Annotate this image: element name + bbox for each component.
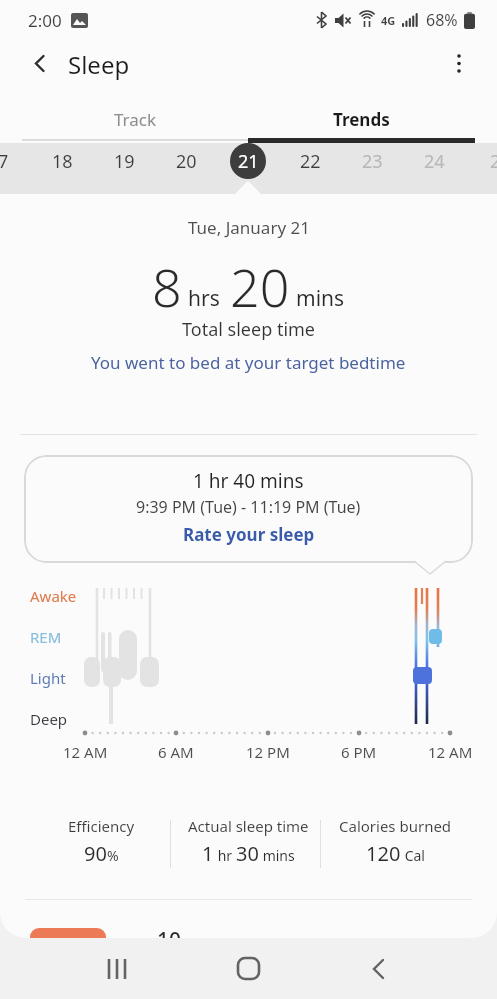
button[interactable]: Actual sleep time — [168, 812, 328, 867]
button[interactable]: 21 — [230, 143, 266, 179]
button[interactable]: Track — [22, 96, 248, 143]
staticText: 8 — [152, 251, 182, 322]
button[interactable] — [226, 946, 271, 991]
staticText: 90 — [84, 840, 107, 867]
staticText: Awake — [30, 586, 77, 606]
staticText: REM — [30, 627, 62, 647]
staticText: 20 — [176, 149, 197, 174]
staticText: Track — [114, 108, 157, 131]
button[interactable]: 24 — [404, 143, 464, 179]
button[interactable]: 7 — [0, 143, 33, 179]
staticText: 10 — [157, 926, 182, 938]
staticText: 4G — [381, 13, 396, 28]
button[interactable] — [356, 946, 401, 991]
staticText: 19 — [114, 149, 135, 174]
button[interactable]: Efficiency — [26, 812, 176, 867]
staticText: 20 — [230, 251, 290, 322]
staticText: 23 — [362, 149, 383, 174]
staticText: 30 — [236, 840, 259, 867]
staticText: Total sleep time — [182, 317, 316, 342]
button[interactable]: 2 — [465, 143, 497, 179]
button[interactable]: Calories burned — [315, 812, 475, 867]
staticText: 6 AM — [158, 742, 194, 762]
button[interactable]: Trends — [248, 96, 475, 143]
staticText: % — [107, 846, 119, 865]
staticText: 68% — [426, 9, 458, 31]
button[interactable]: 20 — [156, 143, 216, 179]
staticText: hr — [214, 846, 236, 865]
staticText: 22 — [300, 149, 321, 174]
staticText: 7 — [0, 149, 9, 174]
staticText: Calories burned — [339, 816, 452, 836]
staticText: 12 PM — [246, 742, 290, 762]
button[interactable] — [440, 44, 478, 82]
button[interactable]: 1 hr 40 mins — [24, 455, 473, 563]
staticText: Sleep — [68, 48, 130, 81]
staticText: Efficiency — [68, 816, 135, 836]
staticText: 6 PM — [341, 742, 377, 762]
staticText: Trends — [333, 108, 390, 131]
staticText: Actual sleep time — [188, 816, 309, 836]
staticText: 1 — [202, 840, 214, 867]
button[interactable]: 22 — [280, 143, 340, 179]
staticText: 18 — [52, 149, 73, 174]
staticText: Cal — [401, 846, 425, 865]
staticText: 12 AM — [63, 742, 108, 762]
staticText: Light — [30, 668, 66, 688]
staticText: 120 — [366, 840, 401, 867]
staticText: 24 — [424, 149, 445, 174]
staticText: Deep — [30, 709, 68, 729]
staticText: mins — [259, 846, 295, 865]
staticText: Rate your sleep — [183, 523, 315, 546]
staticText: 9:39 PM (Tue) - 11:19 PM (Tue) — [136, 496, 361, 518]
staticText: 21 — [238, 149, 259, 174]
button[interactable]: 23 — [342, 143, 402, 179]
button[interactable]: 19 — [94, 143, 154, 179]
staticText: 12 AM — [428, 742, 473, 762]
staticText: 2:00 — [28, 9, 62, 32]
staticText: mins — [296, 284, 345, 313]
button[interactable] — [95, 946, 140, 991]
staticText: hrs — [188, 284, 220, 313]
button[interactable] — [22, 45, 58, 81]
staticText: 2 — [490, 149, 497, 174]
staticText: You went to bed at your target bedtime — [91, 351, 406, 374]
button[interactable]: 18 — [32, 143, 92, 179]
button[interactable] — [30, 928, 106, 938]
staticText: 1 hr 40 mins — [193, 468, 304, 494]
staticText: Tue, January 21 — [188, 216, 310, 239]
